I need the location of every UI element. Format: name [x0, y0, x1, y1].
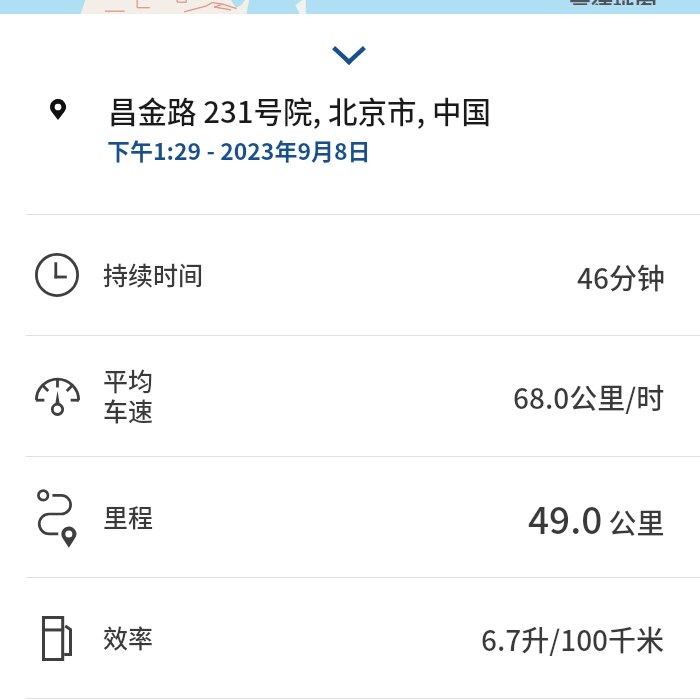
staticText: 昌金路 231号院, 北京市, 中国 — [108, 89, 491, 132]
button[interactable]: Collapse — [327, 33, 371, 77]
staticText: 49.0 公里 — [528, 491, 665, 545]
staticText: 下午1:29 - 2023年9月8日 — [107, 133, 371, 166]
staticText: 持续时间 — [103, 256, 204, 292]
button[interactable]: 昌金路 231号院, 北京市, 中国 — [0, 88, 700, 174]
button[interactable]: 效率 — [0, 578, 700, 698]
button[interactable]: 平均 车速 — [0, 336, 700, 456]
staticText: 6.7升/100千米 — [481, 619, 665, 660]
staticText: 里程 — [103, 498, 154, 534]
button[interactable]: 里程 — [0, 457, 700, 577]
staticText: 平均 车速 — [103, 362, 154, 428]
staticText: 68.0公里/时 — [513, 377, 665, 418]
staticText: 效率 — [103, 619, 154, 655]
staticText: 46分钟 — [577, 257, 665, 298]
staticText: 高德地图 — [569, 0, 658, 5]
button[interactable]: 持续时间 — [0, 215, 700, 335]
